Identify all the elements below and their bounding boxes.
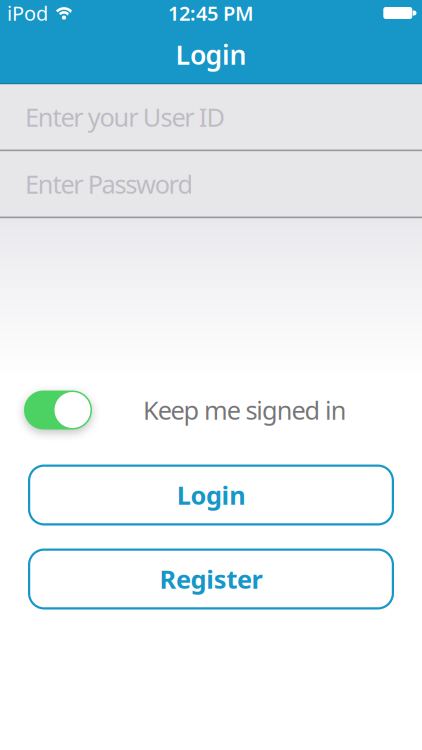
button[interactable]: Enter Password <box>0 151 422 216</box>
button[interactable]: Login <box>28 464 394 525</box>
staticText: 12:45 PM <box>168 0 254 26</box>
staticText: Enter Password <box>25 167 193 201</box>
staticText: Login <box>175 37 246 72</box>
staticText: iPod <box>7 0 48 26</box>
staticText: Enter your User ID <box>25 100 225 134</box>
button[interactable]: Register <box>28 548 394 609</box>
button[interactable]: Keep me signed in <box>24 390 92 429</box>
staticText: Register <box>159 562 263 596</box>
button[interactable]: Enter your User ID <box>0 84 422 149</box>
staticText: Login <box>177 478 245 512</box>
staticText: Keep me signed in <box>143 393 347 427</box>
